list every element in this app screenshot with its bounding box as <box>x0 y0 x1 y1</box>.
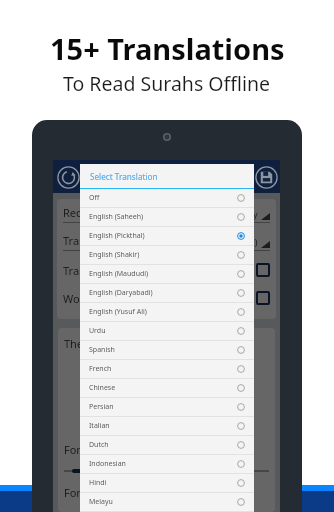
button[interactable]: Off <box>80 189 254 207</box>
button[interactable]: English (Yusuf Ali) <box>80 303 254 321</box>
staticText: Translation <box>63 233 186 248</box>
button[interactable]: Hindi <box>80 474 254 492</box>
staticText: English (Maududi) <box>89 269 237 279</box>
button[interactable]: Persian <box>80 398 254 416</box>
button[interactable]: Translation <box>63 228 270 256</box>
staticText: 15+ Translations <box>50 29 285 68</box>
button[interactable]: English (Daryabadi) <box>80 284 254 302</box>
staticText: Font Size (Arabic) <box>64 442 153 457</box>
staticText: Melayu <box>89 497 237 507</box>
staticText: English (Pickthal) <box>186 236 258 248</box>
button[interactable]: Refresh <box>54 163 82 191</box>
button[interactable]: English (Pickthal) <box>80 227 254 245</box>
button[interactable]: Recitation <box>63 200 270 228</box>
staticText: Spanish <box>89 345 237 355</box>
button[interactable]: English (Shakir) <box>80 246 254 264</box>
button[interactable]: Transliteration <box>63 256 270 284</box>
staticText: English (Shakir) <box>89 250 237 260</box>
button[interactable]: English (Saheeh) <box>80 208 254 226</box>
button[interactable]: Melayu <box>80 493 254 511</box>
staticText: English (Daryabadi) <box>89 288 237 298</box>
staticText: Italian <box>89 421 237 431</box>
button[interactable]: Urdu <box>80 322 254 340</box>
staticText: Off <box>89 193 237 203</box>
staticText: Chinese <box>89 383 237 393</box>
staticText: Dutch <box>89 440 237 450</box>
staticText: Indonesian <box>89 459 237 469</box>
button[interactable]: Word By Word <box>63 284 270 312</box>
staticText: Mishary <box>224 208 258 220</box>
staticText: English (Pickthal) <box>89 231 237 241</box>
button[interactable]: Dutch <box>80 436 254 454</box>
staticText: Theme <box>64 336 100 351</box>
button[interactable]: English (Maududi) <box>80 265 254 283</box>
button[interactable]: Italian <box>80 417 254 435</box>
staticText: Select Translation <box>90 171 158 182</box>
staticText: To Read Surahs Offline <box>63 70 271 97</box>
staticText: Word By Word <box>63 291 256 306</box>
button[interactable]: Spanish <box>80 341 254 359</box>
staticText: Persian <box>89 402 237 412</box>
button[interactable]: French <box>80 360 254 378</box>
staticText: Hindi <box>89 478 237 488</box>
button[interactable]: Indonesian <box>80 455 254 473</box>
staticText: English (Yusuf Ali) <box>89 307 237 317</box>
staticText: French <box>89 364 237 374</box>
staticText: Recitation <box>63 205 224 220</box>
staticText: English (Saheeh) <box>89 212 237 222</box>
staticText: Urdu <box>89 326 237 336</box>
button[interactable]: Save <box>252 163 280 191</box>
staticText: Transliteration <box>63 263 256 278</box>
staticText: Font Size (Translation) <box>64 485 178 500</box>
button[interactable]: Chinese <box>80 379 254 397</box>
